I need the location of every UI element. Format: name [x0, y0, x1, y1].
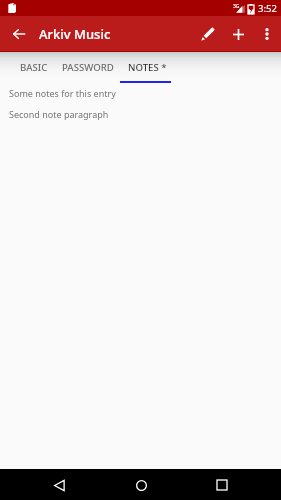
button[interactable]: Recent apps	[207, 470, 237, 500]
staticText: PASSWORD	[62, 61, 114, 74]
button[interactable]: More options	[253, 20, 281, 48]
button[interactable]: Add	[223, 19, 253, 49]
button[interactable]: Home	[126, 470, 156, 500]
staticText: BASIC	[20, 61, 48, 74]
button[interactable]: Back	[5, 20, 33, 48]
staticText: Arkiv Music	[39, 25, 111, 43]
staticText: NOTES *	[128, 61, 167, 74]
staticText: Second note paragraph	[9, 108, 109, 120]
button[interactable]: PASSWORD	[55, 52, 120, 83]
staticText: Some notes for this entry	[9, 87, 116, 99]
staticText: 3:52	[258, 2, 277, 15]
button[interactable]: BASIC	[13, 52, 55, 83]
button[interactable]: Back	[44, 470, 74, 500]
button[interactable]: Edit	[193, 19, 223, 49]
staticText: 3G	[233, 3, 240, 10]
button[interactable]: NOTES *	[120, 52, 171, 83]
